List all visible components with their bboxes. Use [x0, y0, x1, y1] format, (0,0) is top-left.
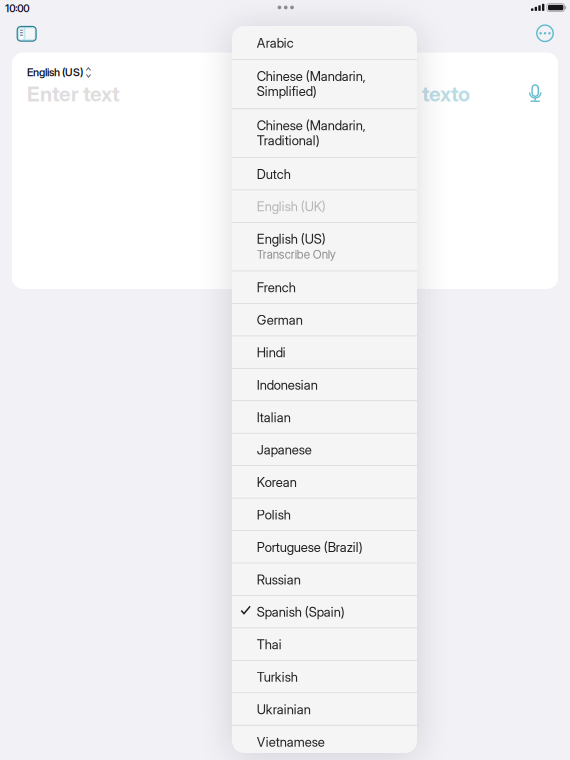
- button[interactable]: Portuguese (Brazil): [232, 530, 417, 563]
- button[interactable]: Italian: [232, 400, 417, 433]
- button[interactable]: Vietnamese: [232, 725, 417, 757]
- button[interactable]: More Options: [0, 0, 553, 41]
- button[interactable]: Dutch: [232, 157, 417, 190]
- staticText: Enter text: [27, 81, 120, 106]
- staticText: Italian: [257, 409, 291, 425]
- button[interactable]: English (US): [232, 222, 417, 271]
- staticText: Transcribe Only: [257, 247, 336, 262]
- staticText: Thai: [257, 637, 282, 652]
- button[interactable]: Chinese (Mandarin,: [232, 108, 417, 157]
- button[interactable]: Polish: [232, 498, 417, 530]
- button[interactable]: English (UK): [232, 190, 417, 222]
- staticText: Indonesian: [257, 377, 318, 393]
- staticText: Turkish: [257, 669, 298, 685]
- staticText: Chinese (Mandarin,: [257, 117, 366, 133]
- button[interactable]: Spanish (Spain): [232, 595, 417, 628]
- staticText: Russian: [257, 572, 301, 588]
- staticText: texto: [422, 81, 470, 106]
- button[interactable]: French: [232, 271, 417, 303]
- staticText: Korean: [257, 474, 297, 490]
- staticText: Hindi: [257, 345, 286, 360]
- button[interactable]: Turkish: [232, 660, 417, 693]
- staticText: Polish: [257, 507, 291, 523]
- staticText: Dutch: [257, 166, 291, 182]
- button[interactable]: Japanese: [232, 433, 417, 465]
- staticText: Vietnamese: [257, 734, 325, 750]
- staticText: Spanish (Spain): [257, 604, 345, 620]
- button[interactable]: Korean: [232, 465, 417, 498]
- button[interactable]: Hindi: [232, 336, 417, 368]
- button[interactable]: Indonesian: [232, 368, 417, 400]
- button[interactable]: Thai: [232, 628, 417, 660]
- staticText: French: [257, 280, 296, 295]
- button[interactable]: German: [232, 303, 417, 335]
- staticText: Japanese: [257, 442, 312, 458]
- staticText: English (US): [27, 66, 83, 79]
- staticText: Arabic: [257, 35, 294, 51]
- staticText: English (UK): [257, 199, 326, 214]
- staticText: Ukrainian: [257, 701, 311, 717]
- staticText: Chinese (Mandarin,: [257, 68, 366, 84]
- staticText: Simplified): [257, 83, 317, 99]
- button[interactable]: Dictate: [12, 52, 544, 103]
- button[interactable]: Chinese (Mandarin,: [232, 59, 417, 108]
- staticText: German: [257, 312, 303, 328]
- staticText: 10:00: [5, 3, 29, 15]
- button[interactable]: Russian: [232, 563, 417, 595]
- staticText: Traditional): [257, 132, 320, 148]
- staticText: English (US): [257, 231, 326, 247]
- button[interactable]: Arabic: [232, 26, 417, 59]
- button[interactable]: English (US): [27, 66, 91, 79]
- staticText: Portuguese (Brazil): [257, 539, 363, 555]
- button[interactable]: Ukrainian: [232, 692, 417, 725]
- button[interactable]: Show Sidebar: [0, 0, 36, 41]
